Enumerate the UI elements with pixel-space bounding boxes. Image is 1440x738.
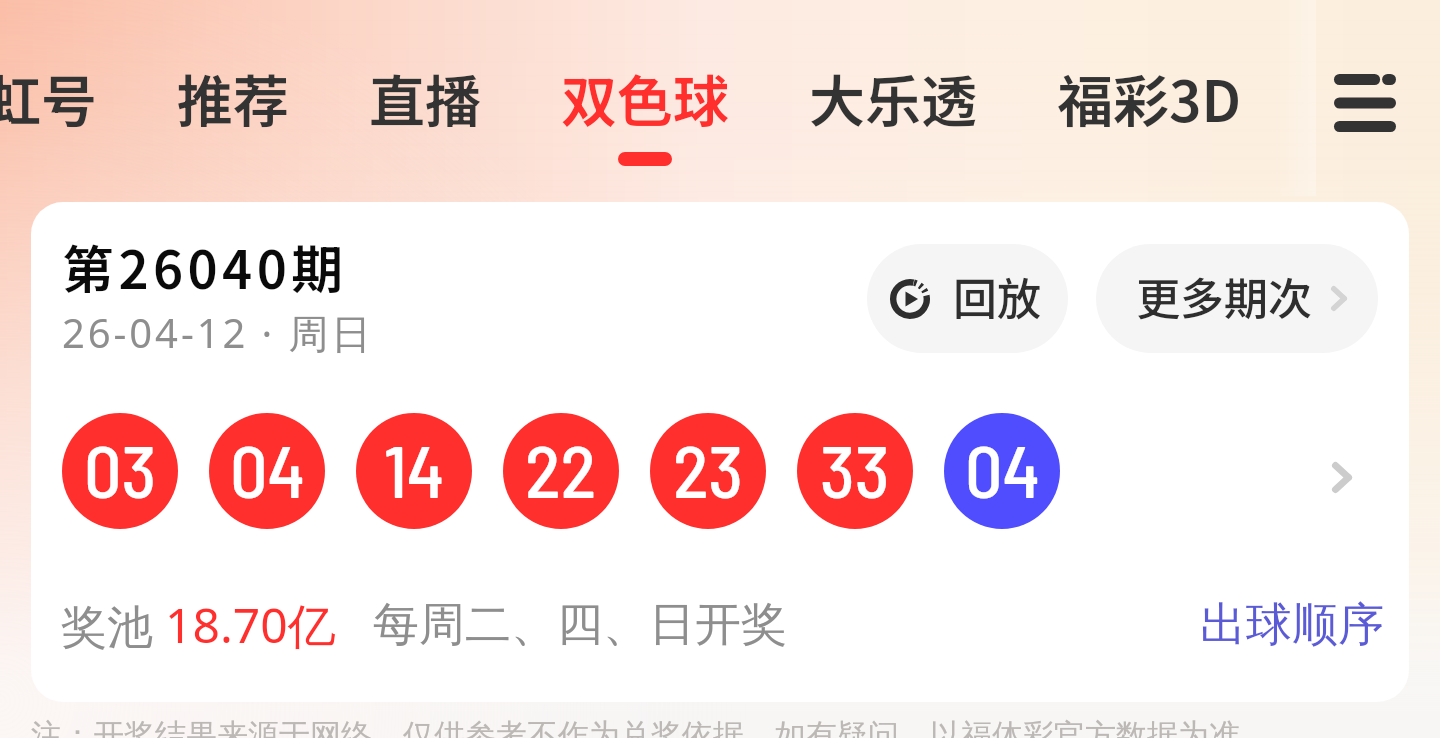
button[interactable]: 直播 [329, 0, 521, 196]
staticText: 出球顺序 [1200, 596, 1384, 654]
button[interactable]: More numbers [1314, 449, 1370, 505]
staticText: 23 [673, 424, 744, 513]
staticText: 福彩3D [1057, 57, 1242, 138]
button[interactable]: 双色球 [521, 0, 769, 196]
button[interactable]: 大乐透 [769, 0, 1017, 196]
staticText: 26-04-12 · 周日 [62, 305, 375, 360]
staticText: 14 [384, 424, 445, 513]
button[interactable]: 推荐 [137, 0, 329, 196]
staticText: 更多期次 [1136, 264, 1312, 328]
staticText: 33 [820, 424, 890, 513]
staticText: 04 [965, 424, 1040, 513]
button[interactable]: 回放 [867, 244, 1068, 353]
staticText: 04 [230, 424, 305, 513]
staticText: 大乐透 [809, 57, 977, 138]
button[interactable]: 出球顺序 [1192, 588, 1392, 662]
button[interactable]: 更多期次 [1096, 244, 1378, 353]
staticText: 18.70亿 [165, 592, 336, 658]
staticText: 奖池 [61, 594, 165, 657]
staticText: 每周二、四、日开奖 [373, 596, 787, 654]
button[interactable]: 彩虹号 [0, 0, 137, 196]
button[interactable]: Menu [1304, 53, 1426, 153]
staticText: 直播 [369, 57, 481, 138]
staticText: 回放 [953, 264, 1041, 328]
staticText: 双色球 [561, 57, 729, 138]
staticText: 注：开奖结果来源于网络，仅供参考不作为兑奖依据，如有疑问，以福体彩官方数据为准 [31, 716, 1240, 738]
staticText: 03 [84, 424, 157, 513]
staticText: 第26040期 [62, 229, 348, 304]
staticText: 推荐 [177, 57, 289, 138]
staticText: 彩虹号 [0, 57, 97, 138]
button[interactable]: 福彩3D [1017, 0, 1282, 196]
button[interactable]: 第26040期 [31, 202, 1409, 702]
staticText: 22 [525, 424, 597, 513]
